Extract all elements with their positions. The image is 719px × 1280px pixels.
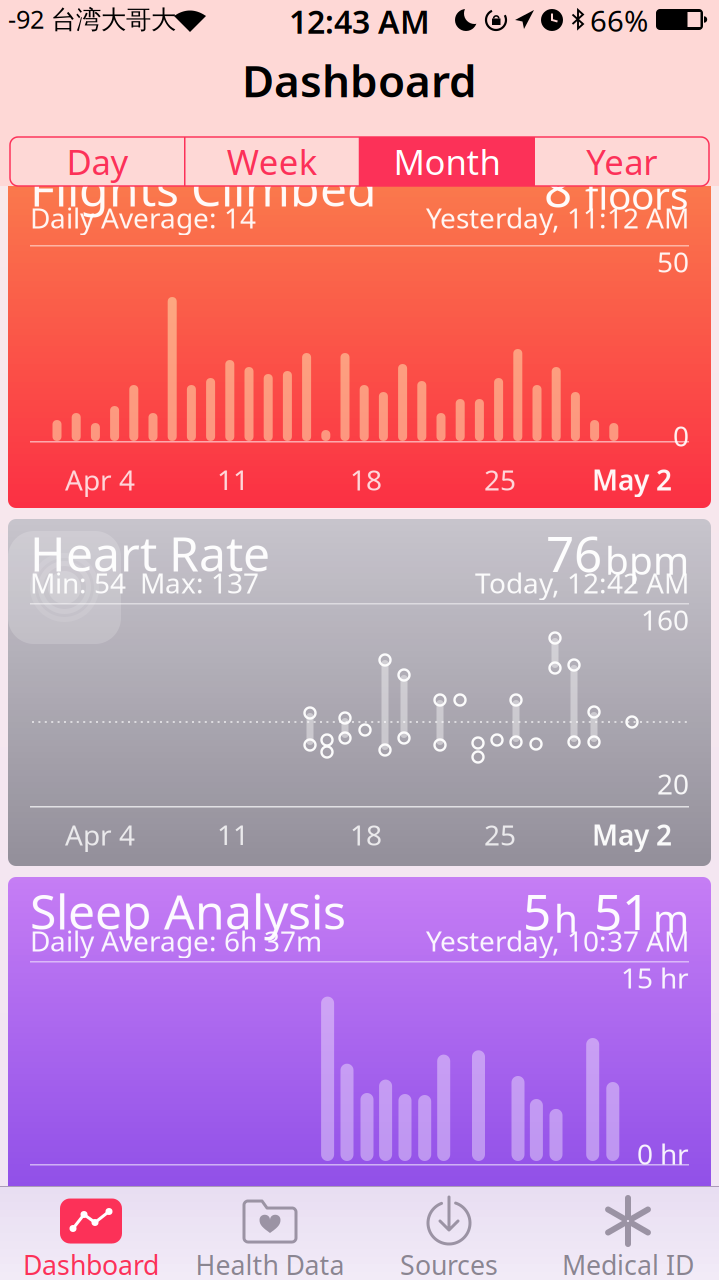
button[interactable]: Sleep Analysis: [8, 877, 711, 1224]
button[interactable]: Health Data: [180, 1187, 359, 1279]
staticText: Yesterday, 10:37 AM: [426, 922, 689, 959]
button[interactable]: Heart Rate: [8, 519, 711, 866]
staticText: 20: [657, 765, 689, 802]
staticText: Heart Rate: [30, 521, 270, 585]
staticText: 0: [673, 417, 689, 454]
staticText: 66%: [590, 1, 648, 40]
button[interactable]: Medical ID: [538, 1187, 717, 1279]
staticText: h: [554, 892, 578, 943]
staticText: 18: [350, 816, 382, 853]
staticText: bpm: [605, 534, 689, 585]
staticText: 8: [544, 155, 572, 220]
staticText: Year: [586, 138, 657, 184]
staticText: Min: 54 Max: 137: [30, 564, 259, 601]
staticText: Daily Average: 6h 37m: [30, 922, 322, 959]
button[interactable]: Day: [10, 137, 185, 186]
button[interactable]: Dashboard: [1, 1187, 180, 1279]
staticText: Yesterday, 11:12 AM: [426, 199, 689, 236]
staticText: 50: [657, 243, 689, 280]
button[interactable]: AssistiveTouch: [8, 531, 121, 644]
staticText: 25: [484, 816, 516, 853]
staticText: Sources: [400, 1247, 498, 1280]
staticText: 11: [217, 461, 249, 498]
button[interactable]: Year: [534, 137, 709, 186]
button[interactable]: Sources: [359, 1187, 538, 1279]
staticText: -92 台湾大哥大: [8, 2, 176, 36]
staticText: Apr 4: [65, 816, 135, 853]
staticText: 15 hr: [621, 959, 689, 996]
staticText: 12:43 AM: [289, 0, 430, 42]
staticText: May 2: [592, 816, 672, 853]
staticText: May 2: [592, 461, 672, 498]
staticText: 11: [217, 816, 249, 853]
staticText: 18: [350, 461, 382, 498]
staticText: Dashboard: [242, 51, 477, 109]
staticText: floors: [575, 169, 689, 220]
staticText: Daily Average: 14: [30, 199, 256, 236]
staticText: Medical ID: [562, 1247, 694, 1280]
staticText: Apr 4: [65, 461, 135, 498]
button[interactable]: Flights Climbed: [8, 161, 711, 508]
button[interactable]: Week: [185, 137, 360, 186]
staticText: Dashboard: [23, 1247, 159, 1280]
staticText: Sleep Analysis: [30, 879, 346, 943]
staticText: Today, 12:42 AM: [475, 564, 689, 601]
staticText: 160: [641, 601, 689, 638]
staticText: 5: [523, 878, 551, 943]
staticText: Week: [227, 138, 318, 184]
staticText: Health Data: [195, 1247, 344, 1280]
staticText: Flights Climbed: [30, 156, 377, 220]
staticText: 51: [581, 878, 650, 943]
staticText: m: [653, 892, 689, 943]
staticText: 76: [546, 520, 602, 585]
staticText: Day: [66, 138, 128, 184]
staticText: 25: [484, 461, 516, 498]
button[interactable]: Month: [359, 137, 534, 186]
staticText: 0 hr: [637, 1135, 689, 1172]
staticText: Month: [393, 138, 500, 184]
